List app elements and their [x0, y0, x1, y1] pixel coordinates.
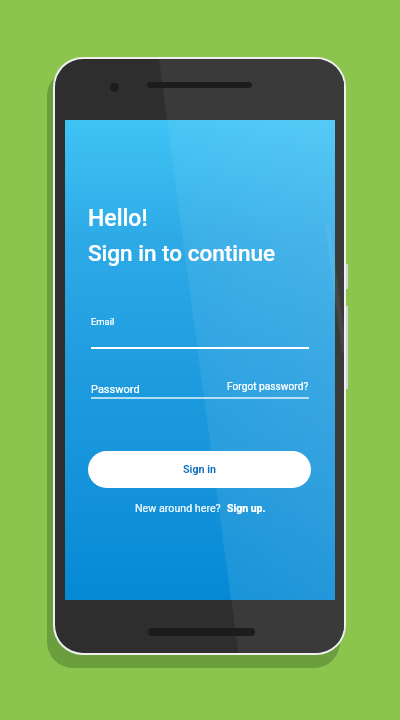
staticText: Email: [91, 316, 115, 327]
staticText: Sign in: [183, 463, 216, 476]
staticText: Forgot password?: [227, 381, 309, 393]
staticText: Sign in to continue: [88, 240, 276, 266]
staticText: Hello!: [88, 205, 148, 232]
button[interactable]: Sign in: [88, 451, 311, 488]
button[interactable]: New around here?: [125, 500, 275, 516]
button[interactable]: Forgot password?: [223, 377, 309, 397]
staticText: New around here?: [135, 502, 221, 515]
staticText: Password: [91, 383, 140, 396]
staticText: Sign up.: [227, 502, 266, 514]
